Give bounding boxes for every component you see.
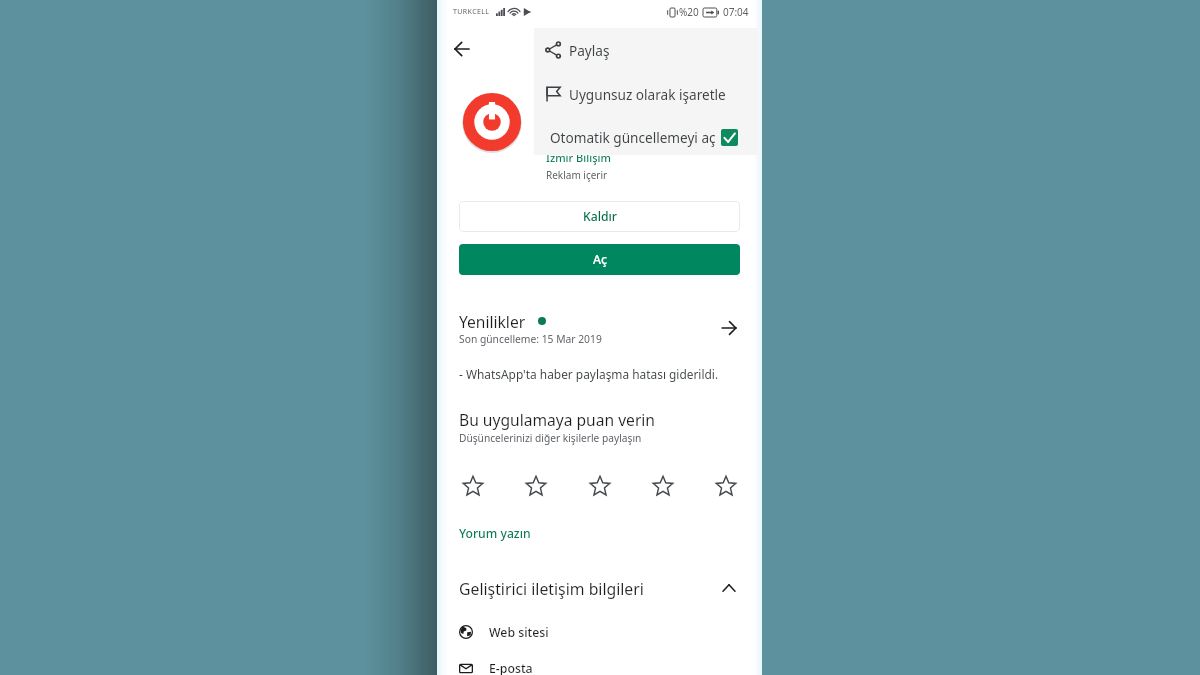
staticText: İzmir Bilişim	[546, 150, 611, 165]
staticText: %20	[679, 5, 699, 19]
button[interactable]: Web sitesi	[459, 618, 740, 646]
staticText: Yenilikler	[459, 311, 526, 332]
button[interactable]: Paylaş	[534, 32, 758, 68]
button[interactable]: Collapse developer contact	[718, 577, 740, 599]
button[interactable]: Yorum yazın	[459, 525, 531, 542]
staticText: Aç	[593, 251, 607, 268]
staticText: Paylaş	[569, 41, 610, 60]
staticText: Web sitesi	[489, 624, 549, 641]
staticText: E-posta	[489, 660, 533, 675]
staticText: Düşüncelerinizi diğer kişilerle paylaşın	[459, 431, 642, 445]
staticText: - WhatsApp'ta haber paylaşma hatası gide…	[459, 366, 719, 382]
button[interactable]: Rate 1 star	[459, 472, 487, 500]
button[interactable]: Rate 5 star	[712, 472, 740, 500]
button[interactable]: Uygunsuz olarak işaretle	[534, 76, 758, 112]
staticText: Uygunsuz olarak işaretle	[569, 85, 726, 104]
button[interactable]: See more about what's new	[715, 314, 743, 342]
staticText: 07:04	[723, 5, 749, 19]
staticText: TURKCELL	[453, 7, 490, 17]
staticText: Bu uygulamaya puan verin	[459, 409, 655, 430]
staticText: Reklam içerir	[546, 168, 608, 182]
staticText: Akıllı Kilitleme	[547, 117, 659, 140]
staticText: Geliştirici iletişim bilgileri	[459, 578, 644, 600]
button[interactable]: Rate 3 star	[586, 472, 614, 500]
button[interactable]: E-posta	[459, 654, 740, 675]
staticText: Yorum yazın	[459, 525, 531, 542]
button[interactable]: Kaldır	[459, 201, 740, 232]
button[interactable]: Rate 4 star	[649, 472, 677, 500]
staticText: Son güncelleme: 15 Mar 2019	[459, 332, 602, 346]
button[interactable]: Rate 2 star	[522, 472, 550, 500]
button[interactable]: Back	[448, 35, 476, 63]
staticText: Kaldır	[583, 208, 617, 225]
button[interactable]: Otomatik güncellemeyi aç	[534, 119, 758, 155]
button[interactable]: Aç	[459, 244, 740, 275]
staticText: Otomatik güncellemeyi aç	[550, 128, 721, 147]
